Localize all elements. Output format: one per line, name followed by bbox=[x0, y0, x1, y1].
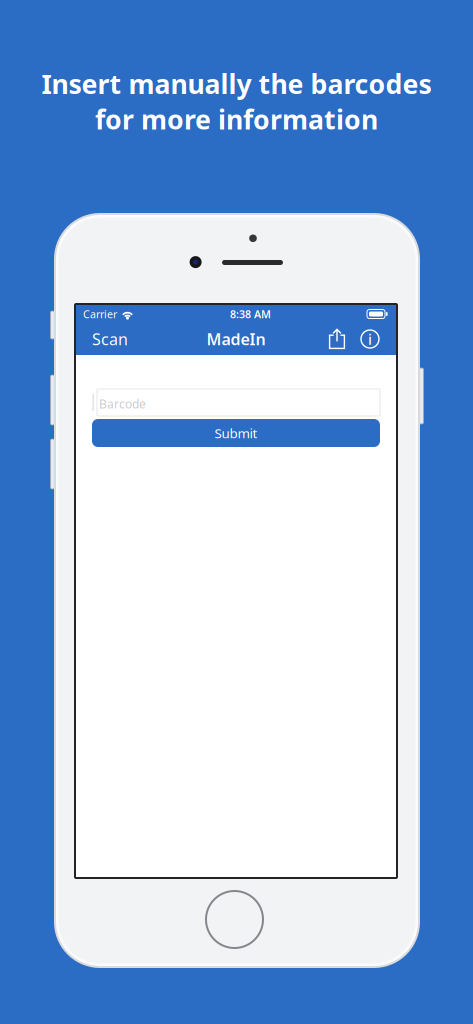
button[interactable]: Scan bbox=[89, 323, 131, 355]
staticText: i bbox=[368, 329, 372, 349]
staticText: Barcode bbox=[99, 396, 146, 412]
staticText: Scan bbox=[92, 328, 128, 350]
button[interactable]: Info bbox=[357, 323, 383, 355]
button[interactable]: Submit bbox=[92, 419, 380, 447]
staticText: for more information bbox=[95, 101, 378, 137]
staticText: 8:38 AM bbox=[230, 307, 271, 321]
staticText: Insert manually the barcodes bbox=[41, 66, 431, 101]
button[interactable]: Share bbox=[322, 323, 352, 355]
staticText: Submit bbox=[214, 424, 257, 442]
staticText: Carrier bbox=[83, 307, 117, 321]
staticText: MadeIn bbox=[206, 328, 265, 350]
